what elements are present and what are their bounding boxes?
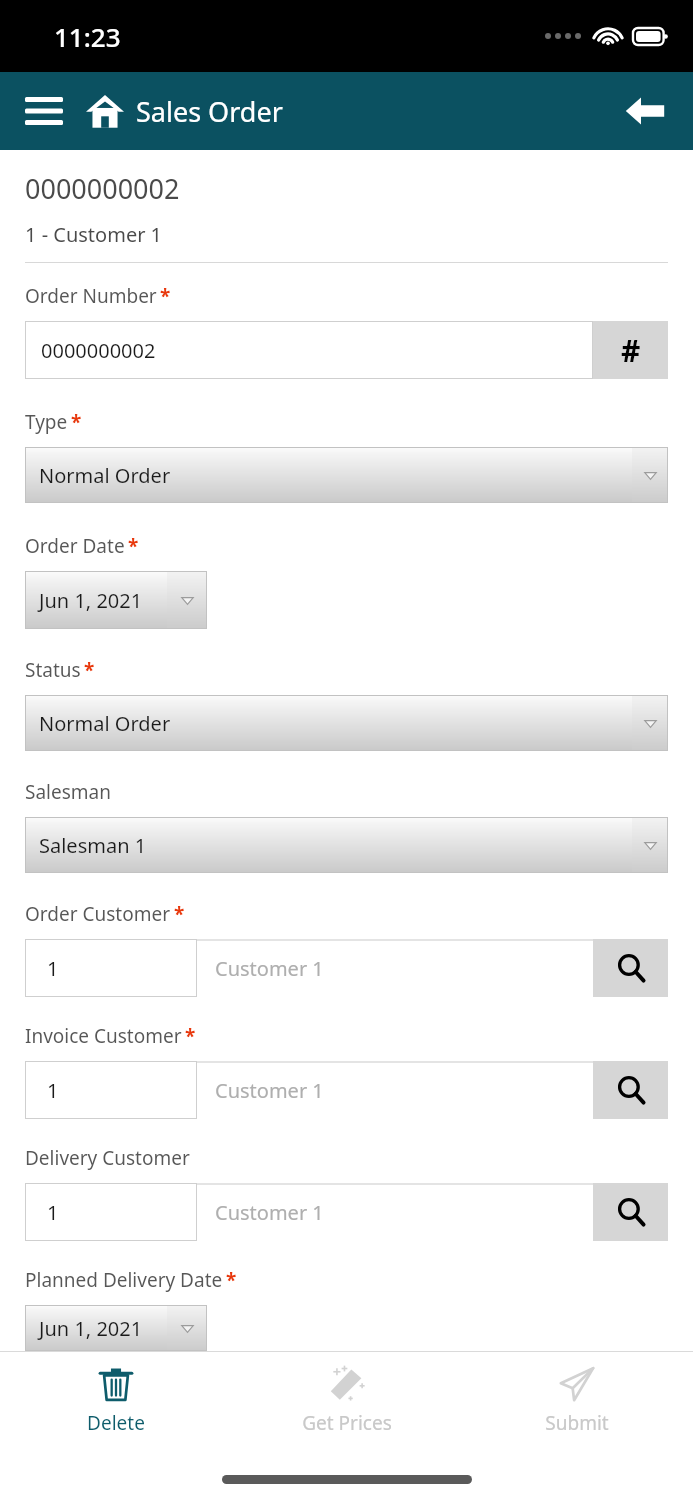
staticText: Customer 1 bbox=[215, 1077, 324, 1104]
staticText: Type bbox=[25, 409, 68, 435]
button[interactable]: Number bbox=[593, 321, 668, 379]
staticText: 1 - Customer 1 bbox=[25, 221, 163, 248]
staticText: * bbox=[71, 409, 82, 435]
button[interactable]: Search bbox=[593, 939, 668, 997]
staticText: * bbox=[226, 1267, 237, 1293]
staticText: 0000000002 bbox=[25, 170, 180, 207]
staticText: Salesman 1 bbox=[39, 832, 632, 859]
staticText: 1 bbox=[47, 1199, 59, 1226]
button[interactable]: Get Prices bbox=[232, 1352, 462, 1458]
staticText: Normal Order bbox=[39, 462, 632, 489]
staticText: * bbox=[174, 901, 185, 927]
staticText: * bbox=[128, 533, 139, 559]
staticText: Customer 1 bbox=[215, 1199, 324, 1226]
staticText: Submit bbox=[545, 1410, 609, 1436]
button[interactable]: Jun 1, 2021 bbox=[25, 1305, 207, 1351]
button[interactable]: Customer 1 bbox=[197, 939, 593, 997]
staticText: * bbox=[185, 1023, 196, 1049]
staticText: 0000000002 bbox=[41, 337, 156, 364]
button[interactable]: Search bbox=[593, 1061, 668, 1119]
button[interactable]: Home bbox=[84, 90, 126, 132]
staticText: * bbox=[84, 657, 95, 683]
staticText: Invoice Customer bbox=[25, 1023, 182, 1049]
staticText: 1 bbox=[47, 1077, 59, 1104]
button[interactable]: Search bbox=[593, 1183, 668, 1241]
button[interactable]: Customer 1 bbox=[197, 1183, 593, 1241]
staticText: * bbox=[160, 283, 171, 309]
button[interactable]: Delete bbox=[1, 1352, 231, 1458]
button[interactable]: Normal Order bbox=[25, 447, 668, 503]
staticText: Normal Order bbox=[39, 710, 632, 737]
staticText: Jun 1, 2021 bbox=[39, 1315, 167, 1342]
button[interactable]: Jun 1, 2021 bbox=[25, 571, 207, 629]
button[interactable]: Submit bbox=[462, 1352, 692, 1458]
button[interactable]: 1 bbox=[25, 1061, 197, 1119]
staticText: Jun 1, 2021 bbox=[39, 587, 167, 614]
staticText: Order Number bbox=[25, 283, 157, 309]
staticText: Order Date bbox=[25, 533, 125, 559]
staticText: 11:23 bbox=[54, 19, 121, 54]
staticText: Order Customer bbox=[25, 901, 171, 927]
button[interactable]: Normal Order bbox=[25, 695, 668, 751]
staticText: Planned Delivery Date bbox=[25, 1267, 223, 1293]
button[interactable]: Salesman 1 bbox=[25, 817, 668, 873]
staticText: Delivery Customer bbox=[25, 1145, 190, 1171]
button[interactable]: 1 bbox=[25, 939, 197, 997]
staticText: Customer 1 bbox=[215, 955, 324, 982]
staticText: Get Prices bbox=[302, 1410, 392, 1436]
staticText: 1 bbox=[47, 955, 59, 982]
button[interactable]: 0000000002 bbox=[25, 321, 593, 379]
staticText: # bbox=[621, 330, 641, 371]
staticText: Delete bbox=[87, 1410, 145, 1436]
button[interactable]: 1 bbox=[25, 1183, 197, 1241]
button[interactable]: Customer 1 bbox=[197, 1061, 593, 1119]
staticText: Salesman bbox=[25, 779, 111, 805]
button[interactable]: Menu bbox=[24, 91, 64, 131]
button[interactable]: Back bbox=[621, 87, 669, 135]
staticText: Status bbox=[25, 657, 81, 683]
staticText: Sales Order bbox=[136, 93, 283, 130]
